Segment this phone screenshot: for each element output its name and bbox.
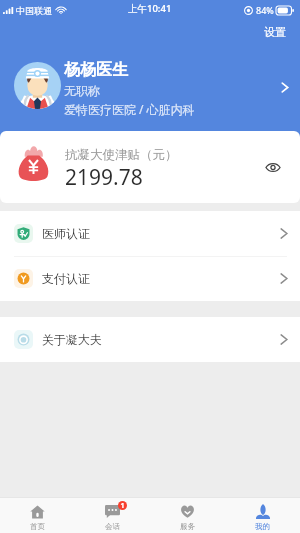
staticText: 2199.78 xyxy=(65,163,143,192)
button[interactable]: 1 xyxy=(75,501,150,531)
button[interactable]: 我的 xyxy=(225,501,300,531)
staticText: 无职称 xyxy=(64,83,100,98)
button[interactable]: 支付认证 xyxy=(0,256,300,301)
button[interactable]: 首页 xyxy=(0,501,75,531)
staticText: 爱特医疗医院 / 心脏内科 xyxy=(64,101,195,117)
staticText: 杨杨医生 xyxy=(64,60,128,80)
button[interactable]: 杨杨医生 xyxy=(0,62,300,119)
staticText: 中国联通 xyxy=(16,5,52,16)
staticText: 上午10:41 xyxy=(128,2,172,15)
button[interactable]: 关于凝大夫 xyxy=(0,317,300,362)
staticText: 会话 xyxy=(105,522,120,531)
button[interactable]: Toggle balance visibility xyxy=(260,154,286,180)
staticText: 84% xyxy=(256,4,274,16)
staticText: 我的 xyxy=(255,522,270,531)
button[interactable]: 设置 xyxy=(258,22,292,42)
button[interactable]: 医师认证 xyxy=(0,211,300,256)
staticText: 首页 xyxy=(30,522,45,531)
button[interactable]: 服务 xyxy=(150,501,225,531)
staticText: 服务 xyxy=(180,522,195,531)
button[interactable]: 抗凝大使津贴（元） xyxy=(0,131,300,203)
staticText: 抗凝大使津贴（元） xyxy=(65,147,178,163)
staticText: 1 xyxy=(120,501,125,510)
staticText: 医师认证 xyxy=(42,226,90,241)
staticText: 支付认证 xyxy=(42,271,90,286)
staticText: 关于凝大夫 xyxy=(42,332,102,347)
staticText: 设置 xyxy=(264,25,286,39)
